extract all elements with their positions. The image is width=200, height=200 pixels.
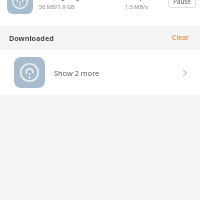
staticText: 1.5 MB/s xyxy=(125,3,148,11)
other: Show more xyxy=(179,67,191,79)
staticText: 56 MB/1.9 GB xyxy=(39,3,75,11)
button[interactable]: com.img.magazine 1.9.1-release.apk xyxy=(0,0,200,26)
button[interactable]: Pause xyxy=(168,0,196,8)
button[interactable]: Clear xyxy=(170,31,191,45)
button[interactable]: Show 2 more xyxy=(0,50,200,95)
staticText: Clear xyxy=(172,33,189,43)
staticText: Downloaded xyxy=(9,33,54,43)
staticText: Show 2 more xyxy=(54,68,100,78)
staticText: Pause xyxy=(173,0,191,5)
